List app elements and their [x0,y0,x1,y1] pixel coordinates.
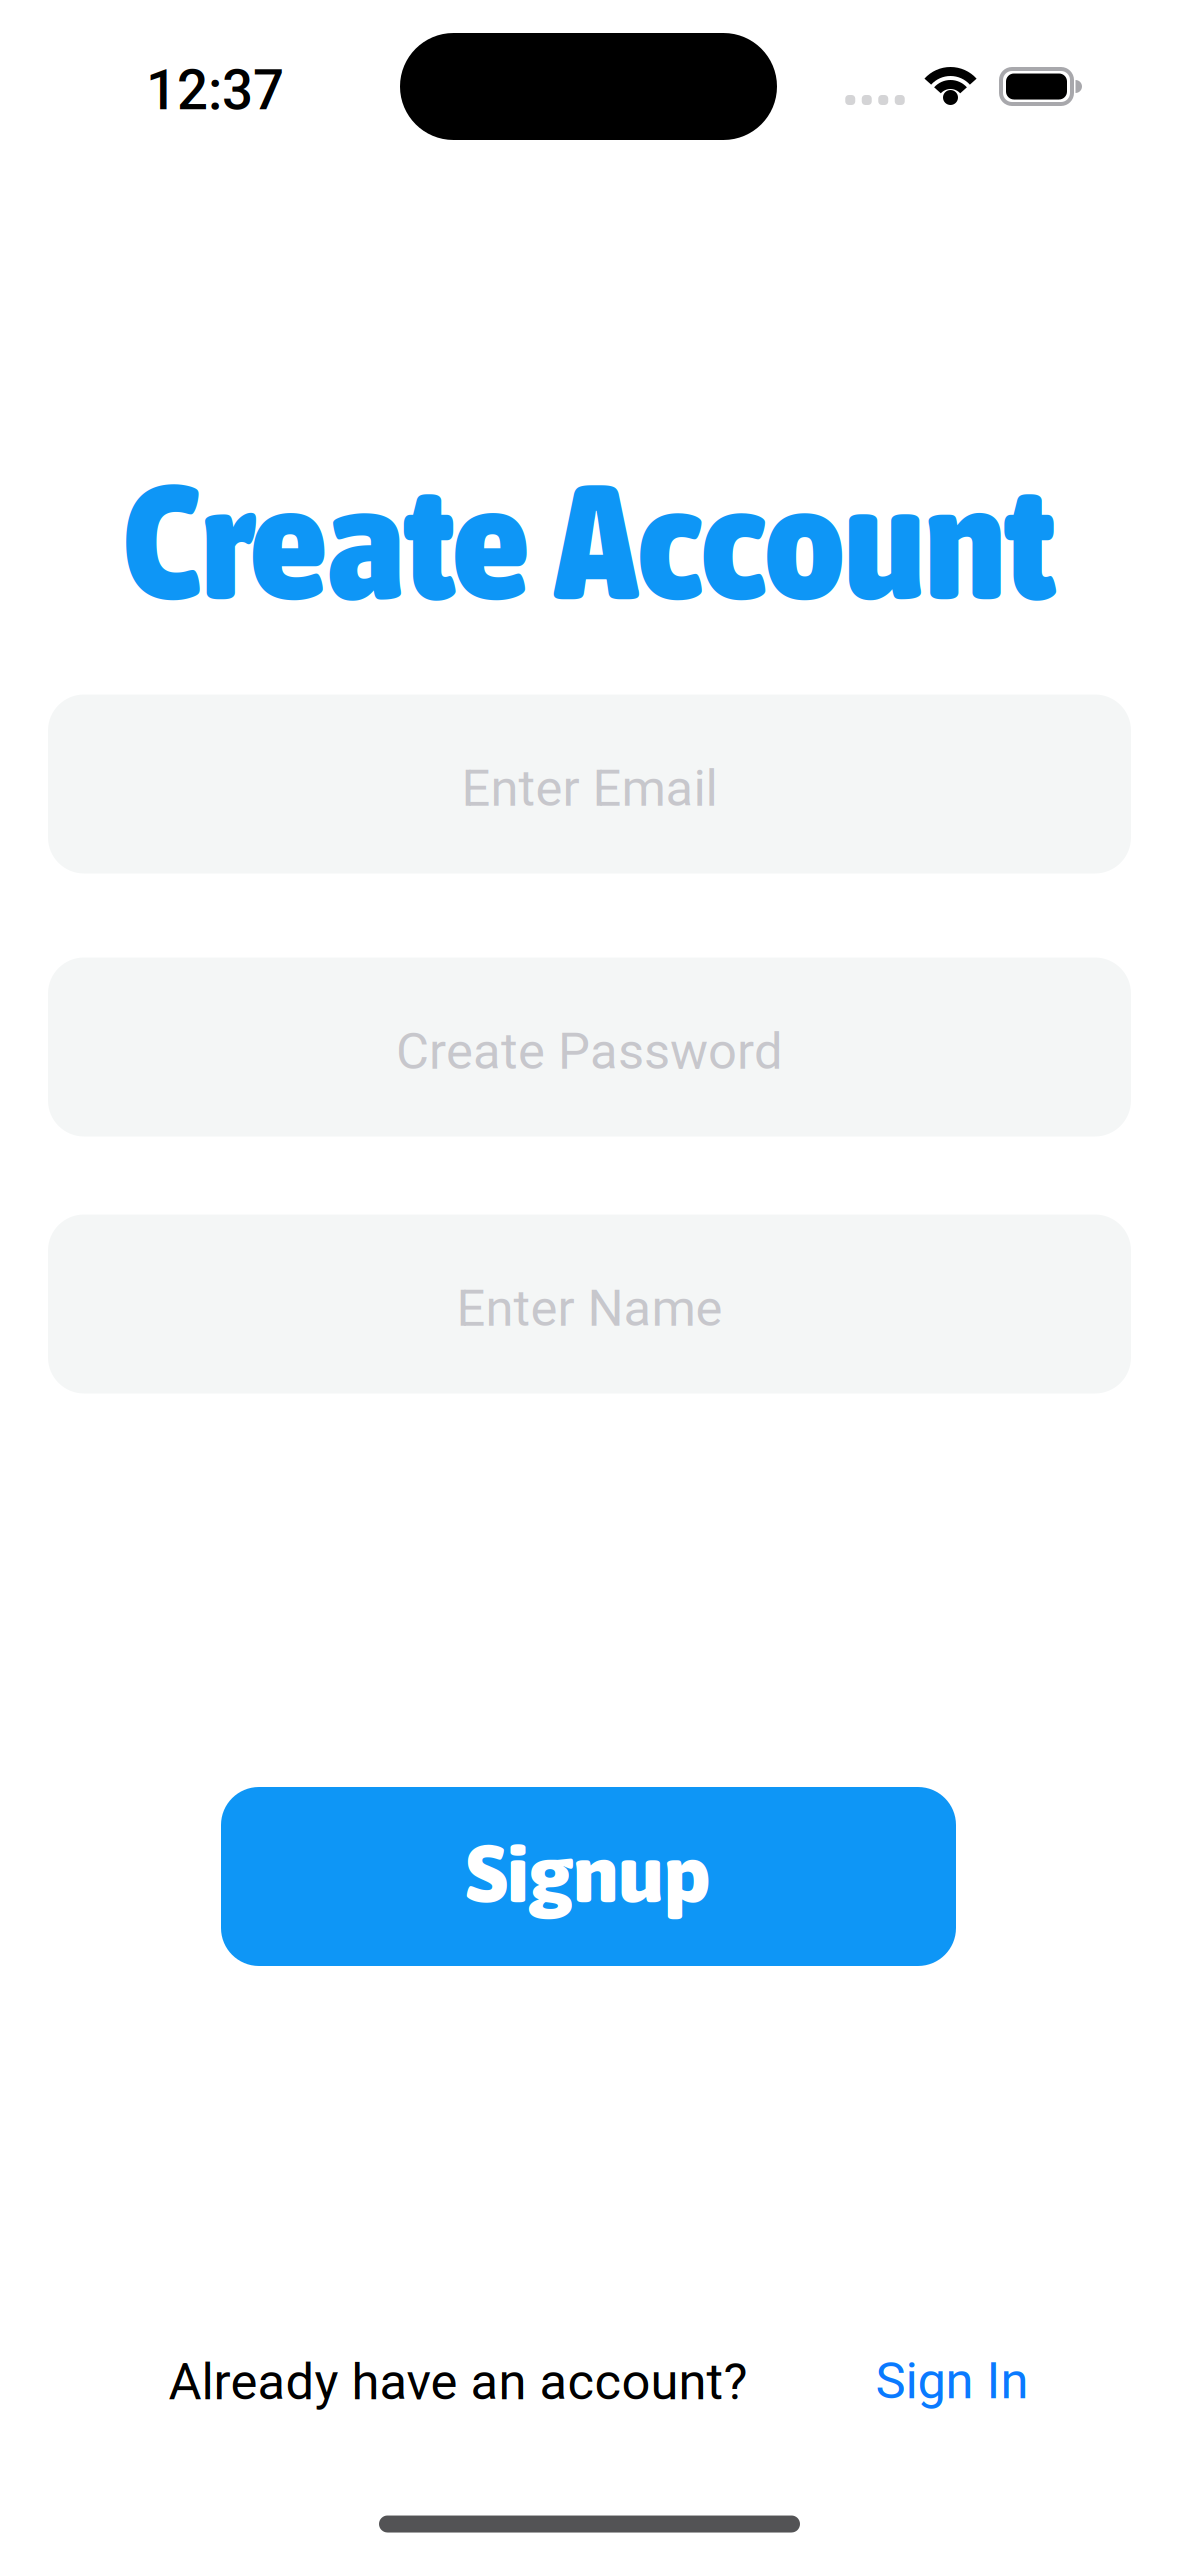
staticText: Create Account [123,449,1054,633]
staticText: Create Password [396,1022,783,1081]
staticText: Enter Name [456,1279,722,1338]
staticText: Enter Email [461,759,717,818]
button[interactable]: Create Password [48,957,1131,1136]
button[interactable]: Enter Name [48,1214,1131,1393]
staticText: 12:37 [146,58,284,123]
button[interactable]: Enter Email [48,694,1131,873]
button[interactable]: Sign In [875,2351,1028,2411]
staticText: Sign In [875,2351,1028,2411]
staticText: Already have an account? [168,2352,747,2412]
button[interactable]: Signup [221,1787,956,1966]
staticText: Signup [467,1828,710,1919]
